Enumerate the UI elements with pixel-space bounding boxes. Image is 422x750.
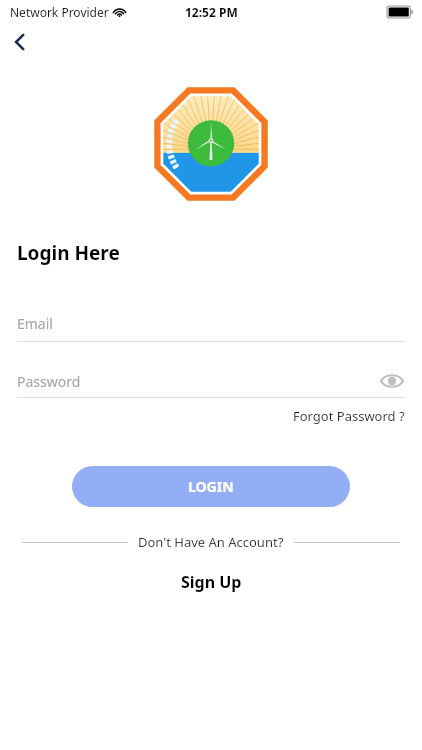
staticText: LOGIN [188,477,234,496]
staticText: Password [17,372,379,391]
staticText: Sign Up [181,571,242,593]
staticText: Network Provider [10,4,109,20]
button[interactable]: Password [17,368,405,398]
staticText: Forgot Password ? [293,407,405,425]
staticText: Email [17,314,53,333]
staticText: Don't Have An Account? [138,533,284,551]
button[interactable]: Forgot Password ? [293,407,405,425]
staticText: Login Here [17,240,120,266]
button[interactable]: Email [17,314,405,342]
button[interactable]: Show password [379,368,405,394]
staticText: 12:52 PM [185,4,238,20]
button[interactable]: LOGIN [72,466,350,507]
button[interactable]: Back [4,26,36,58]
button[interactable]: Sign Up [173,569,250,595]
